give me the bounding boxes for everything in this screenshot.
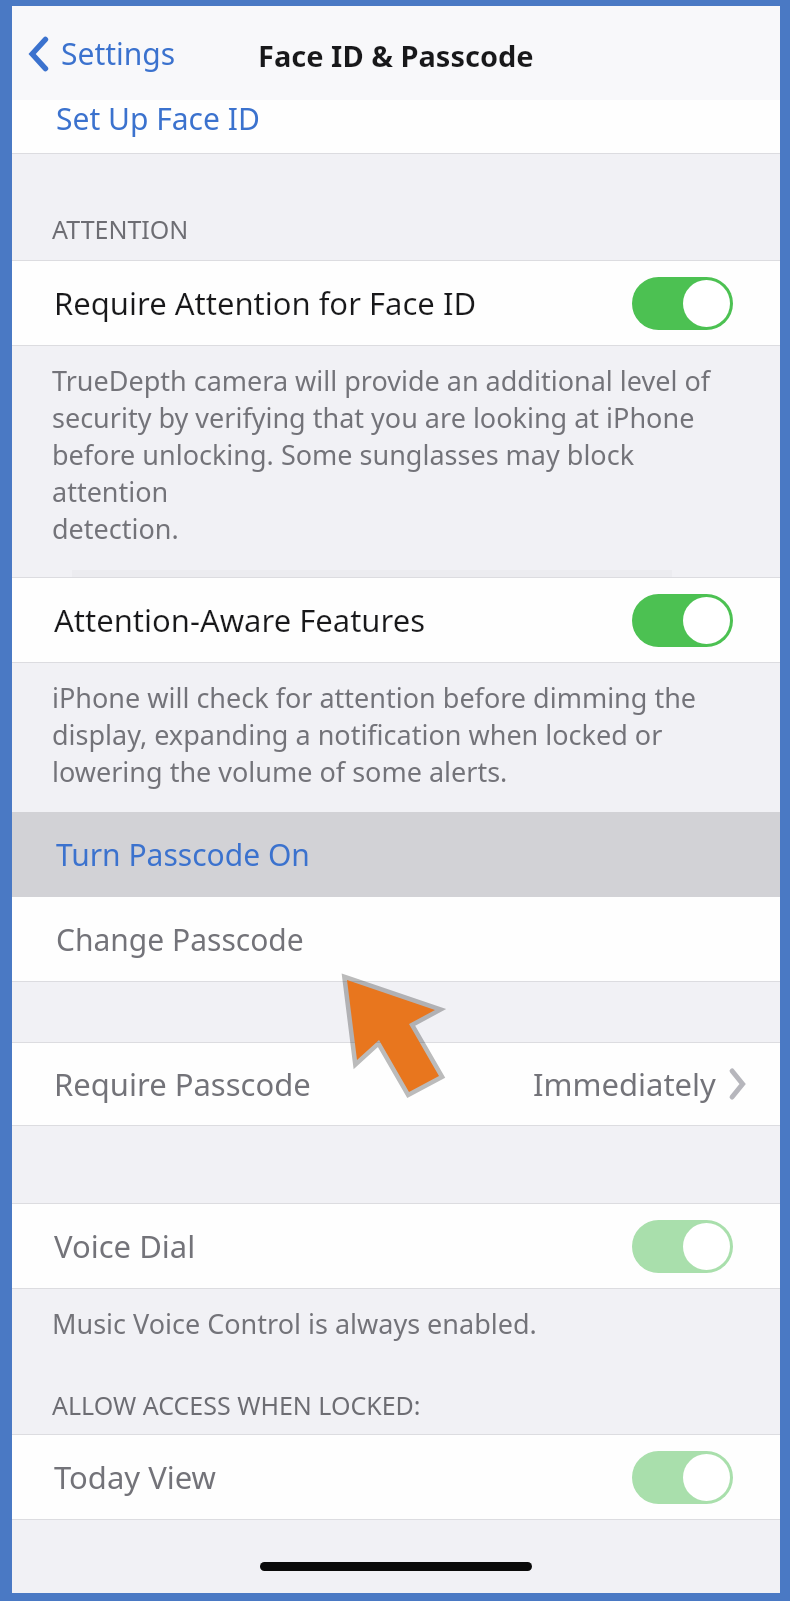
button[interactable]: Voice Dial toggle — [632, 1220, 733, 1273]
staticText: Require Attention for Face ID — [54, 282, 477, 324]
staticText: iPhone will check for attention before d… — [52, 679, 697, 790]
button[interactable]: Turn Passcode On — [12, 812, 780, 897]
staticText: ATTENTION — [52, 212, 189, 246]
button[interactable]: Back to Settings — [24, 27, 182, 80]
button[interactable]: Change Passcode — [12, 897, 780, 982]
staticText: TrueDepth camera will provide an additio… — [52, 362, 750, 547]
staticText: ALLOW ACCESS WHEN LOCKED: — [52, 1388, 421, 1422]
button[interactable]: Require Attention for Face ID toggle — [632, 277, 733, 330]
staticText: Change Passcode — [56, 919, 304, 960]
staticText: Set Up Face ID — [56, 98, 260, 139]
staticText: Today View — [54, 1456, 216, 1498]
button[interactable]: Voice Dial — [12, 1203, 780, 1289]
button[interactable]: Require Attention for Face ID — [12, 260, 780, 346]
button[interactable]: Require Passcode — [12, 1042, 780, 1126]
staticText: Attention-Aware Features — [54, 599, 426, 641]
staticText: Music Voice Control is always enabled. — [52, 1305, 537, 1342]
staticText: Turn Passcode On — [56, 834, 310, 875]
button[interactable]: Today View toggle — [632, 1451, 733, 1504]
staticText: Require Passcode — [54, 1063, 311, 1105]
staticText: Settings — [61, 33, 176, 74]
button[interactable]: Set Up Face ID — [12, 100, 780, 154]
button[interactable]: Attention-Aware Features — [12, 577, 780, 663]
staticText: Face ID & Passcode — [258, 36, 534, 75]
button[interactable]: Today View — [12, 1434, 780, 1520]
staticText: Immediately — [533, 1063, 716, 1105]
staticText: Voice Dial — [54, 1225, 196, 1267]
button[interactable]: Attention-Aware Features toggle — [632, 594, 733, 647]
